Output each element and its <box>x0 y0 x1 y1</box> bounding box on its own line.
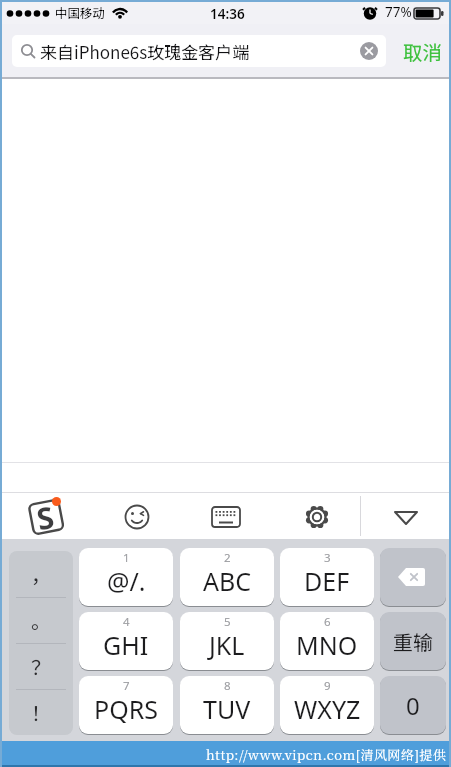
button[interactable]: S <box>26 495 66 537</box>
staticText: http://www.vipcn.com[清风网络]提供 <box>206 745 447 764</box>
button[interactable]: 2 <box>180 548 274 606</box>
staticText: 14:36 <box>210 5 245 23</box>
staticText: 6 <box>324 614 331 630</box>
staticText: 7 <box>123 678 130 694</box>
staticText: 4 <box>123 614 130 630</box>
staticText: @/. <box>107 564 146 598</box>
button[interactable]: 8 <box>180 676 274 734</box>
button[interactable]: 1 <box>79 548 173 606</box>
button[interactable]: 取消 <box>392 35 451 67</box>
button[interactable]: ！ <box>9 690 73 735</box>
button[interactable]: ， <box>9 551 73 597</box>
staticText: TUV <box>203 692 251 726</box>
staticText: 。 <box>31 606 51 635</box>
button[interactable]: 9 <box>280 676 374 734</box>
staticText: 中国移动 <box>55 3 106 21</box>
button[interactable]: 来自iPhone6s玫瑰金客户端 <box>12 35 386 67</box>
button[interactable]: 6 <box>280 612 374 670</box>
button[interactable]: 。 <box>9 598 73 643</box>
button[interactable]: 5 <box>180 612 274 670</box>
button[interactable] <box>208 499 244 535</box>
staticText: ， <box>31 560 51 589</box>
staticText: 来自iPhone6s玫瑰金客户端 <box>40 39 250 64</box>
staticText: ABC <box>203 564 252 598</box>
button[interactable]: 4 <box>79 612 173 670</box>
button[interactable]: 0 <box>380 676 446 734</box>
staticText: 8 <box>224 678 231 694</box>
staticText: GHI <box>103 628 149 662</box>
button[interactable] <box>380 548 446 606</box>
staticText: WXYZ <box>294 692 361 726</box>
button[interactable]: 3 <box>280 548 374 606</box>
staticText: 9 <box>324 678 331 694</box>
button[interactable] <box>119 499 155 535</box>
staticText: DEF <box>304 564 350 598</box>
staticText: 3 <box>324 550 331 566</box>
staticText: ！ <box>31 698 51 727</box>
staticText: 0 <box>406 689 420 722</box>
staticText: MNO <box>296 628 358 662</box>
staticText: 5 <box>224 614 231 630</box>
staticText: ？ <box>31 652 51 681</box>
staticText: JKL <box>209 628 245 662</box>
staticText: S <box>33 496 58 539</box>
staticText: 2 <box>224 550 231 566</box>
button[interactable]: 重输 <box>380 612 446 670</box>
button[interactable]: 7 <box>79 676 173 734</box>
staticText: 取消 <box>403 37 443 65</box>
button[interactable] <box>299 499 335 535</box>
staticText: PQRS <box>94 692 158 726</box>
button[interactable]: ？ <box>9 644 73 689</box>
staticText: 1 <box>123 550 130 566</box>
staticText: 重输 <box>393 627 433 656</box>
button[interactable] <box>386 498 426 534</box>
staticText: 77% <box>385 3 412 21</box>
